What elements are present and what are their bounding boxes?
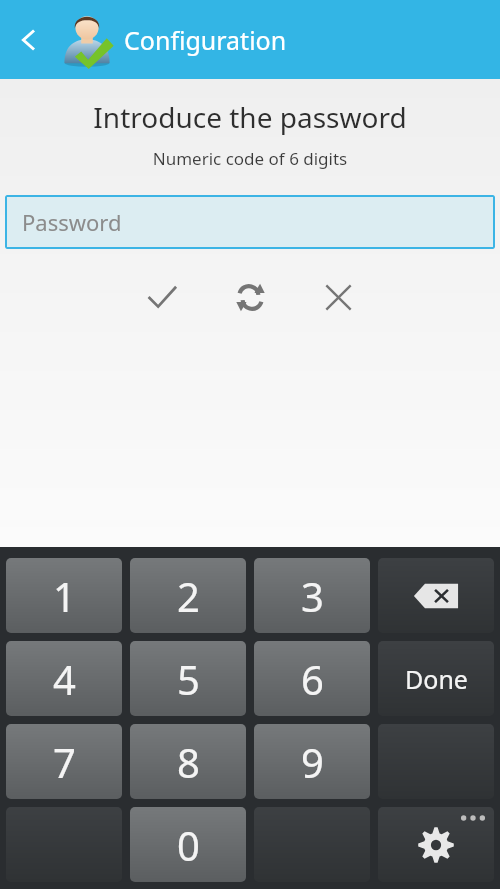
- button[interactable]: 9: [254, 724, 370, 799]
- staticText: 4: [53, 652, 76, 706]
- staticText: Password: [22, 207, 122, 237]
- button[interactable]: 5: [130, 641, 246, 716]
- staticText: 2: [177, 569, 200, 623]
- button[interactable]: 6: [254, 641, 370, 716]
- staticText: Done: [405, 662, 468, 696]
- button[interactable]: Back: [0, 0, 58, 79]
- staticText: 0: [177, 818, 200, 872]
- button[interactable]: 7: [6, 724, 122, 799]
- button[interactable]: Blank: [254, 807, 370, 882]
- staticText: 1: [53, 569, 76, 623]
- button[interactable]: Settings: [378, 807, 494, 882]
- staticText: 7: [53, 735, 76, 789]
- button[interactable]: Backspace: [378, 558, 494, 633]
- button[interactable]: Blank: [378, 724, 494, 799]
- button[interactable]: 3: [254, 558, 370, 633]
- button[interactable]: Refresh: [219, 266, 281, 328]
- button[interactable]: Done: [378, 641, 494, 716]
- button[interactable]: Accept: [131, 266, 193, 328]
- button[interactable]: 4: [6, 641, 122, 716]
- staticText: 6: [301, 652, 324, 706]
- button[interactable]: 1: [6, 558, 122, 633]
- staticText: Introduce the password: [0, 98, 500, 136]
- staticText: Numeric code of 6 digits: [0, 147, 500, 170]
- button[interactable]: 8: [130, 724, 246, 799]
- staticText: 3: [301, 569, 324, 623]
- button[interactable]: 0: [130, 807, 246, 882]
- button[interactable]: 2: [130, 558, 246, 633]
- staticText: Configuration: [124, 23, 287, 57]
- button[interactable]: Cancel: [307, 266, 369, 328]
- staticText: 9: [301, 735, 324, 789]
- button[interactable]: Blank: [6, 807, 122, 882]
- staticText: 8: [177, 735, 200, 789]
- button[interactable]: Password: [5, 195, 495, 249]
- staticText: 5: [177, 652, 200, 706]
